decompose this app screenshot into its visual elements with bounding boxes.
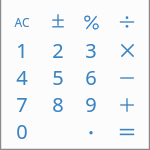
button[interactable]: Minus <box>107 64 147 91</box>
button[interactable]: 4 <box>3 64 41 91</box>
button[interactable]: Plus minus <box>41 8 75 36</box>
staticText: AC <box>14 14 30 30</box>
button[interactable]: Percent <box>75 8 107 36</box>
button[interactable]: 6 <box>75 64 107 91</box>
button[interactable]: Divide <box>107 8 147 36</box>
staticText: 0 <box>16 118 28 145</box>
staticText: 3 <box>85 37 97 64</box>
button[interactable]: Equals <box>107 118 147 145</box>
button[interactable]: 7 <box>3 91 41 118</box>
button[interactable]: Decimal point <box>75 118 107 145</box>
staticText: 7 <box>16 91 28 118</box>
button[interactable]: 0 <box>3 118 41 145</box>
staticText: 9 <box>85 91 97 118</box>
button[interactable]: 5 <box>41 64 75 91</box>
staticText: 8 <box>52 91 64 118</box>
staticText: 2 <box>52 37 64 64</box>
button[interactable]: Multiply <box>107 36 147 64</box>
button[interactable]: 2 <box>41 36 75 64</box>
button[interactable]: 3 <box>75 36 107 64</box>
staticText: 6 <box>85 64 97 91</box>
staticText: 1 <box>16 37 28 64</box>
button[interactable]: 1 <box>3 36 41 64</box>
button[interactable]: 9 <box>75 91 107 118</box>
button[interactable]: 8 <box>41 91 75 118</box>
staticText: 5 <box>52 64 64 91</box>
button[interactable]: AC <box>3 8 41 36</box>
staticText: 4 <box>16 64 28 91</box>
button[interactable]: Plus <box>107 91 147 118</box>
